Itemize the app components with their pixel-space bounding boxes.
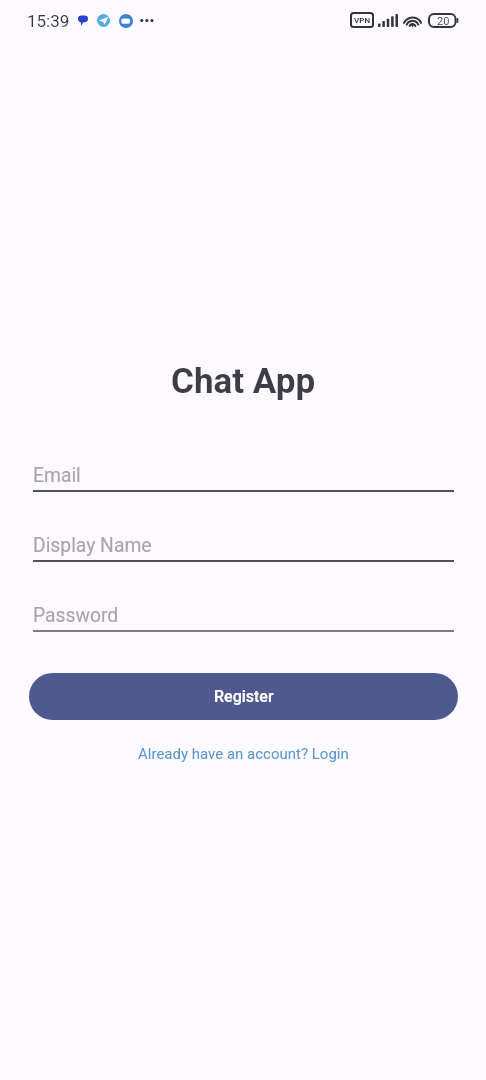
button[interactable]: Register (29, 673, 458, 720)
staticText: 15:39 (27, 11, 70, 31)
button[interactable]: Email (33, 464, 454, 504)
other: Chat notification (119, 14, 133, 28)
staticText: Already have an account? Login (138, 745, 349, 763)
other: VPN active (351, 13, 373, 27)
staticText: Password (33, 604, 119, 627)
staticText: VPN (354, 16, 371, 25)
button[interactable]: Display Name (33, 534, 454, 574)
staticText: Display Name (33, 534, 152, 557)
staticText: Email (33, 464, 81, 487)
staticText: Register (214, 687, 274, 706)
other: Messages notification (78, 15, 88, 26)
staticText: 20 (437, 15, 450, 28)
button[interactable]: Already have an account? Login (132, 742, 355, 766)
other: Mobile signal (378, 14, 398, 27)
other: More notifications (140, 17, 156, 24)
other: Battery 20 percent (429, 14, 459, 27)
other: Telegram notification (97, 14, 110, 27)
button[interactable]: Password (33, 604, 454, 644)
staticText: Chat App (171, 361, 316, 402)
other: Wi-Fi (403, 13, 422, 27)
